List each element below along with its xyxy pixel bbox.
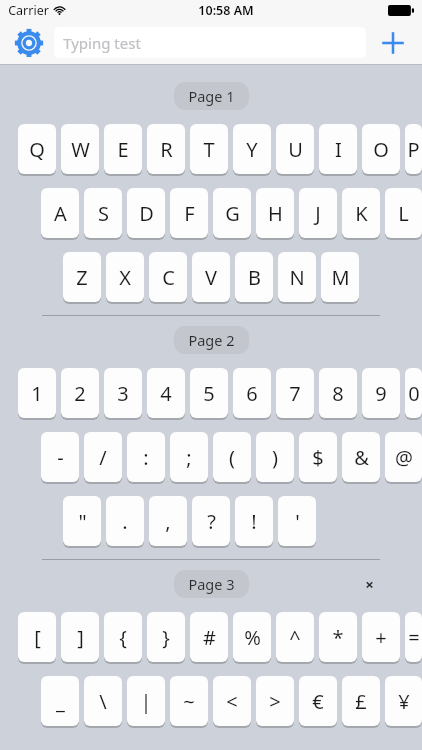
button[interactable]: 7 [276,368,314,418]
button[interactable]: ' [278,496,316,546]
button[interactable]: S [84,188,122,238]
button[interactable]: { [104,612,142,662]
staticText: G [225,200,240,227]
button[interactable]: Page 2 [174,326,249,354]
staticText: O [373,136,389,163]
button[interactable]: ) [256,432,294,482]
button[interactable]: R [147,124,185,174]
button[interactable]: \ [84,676,122,726]
button[interactable]: ; [170,432,208,482]
staticText: \ [99,688,107,715]
staticText: Page 2 [188,330,235,350]
button[interactable]: ! [235,496,273,546]
button[interactable]: N [278,252,316,302]
button[interactable]: Typing test [54,27,366,58]
button[interactable]: % [233,612,271,662]
button[interactable]: | [127,676,165,726]
button[interactable]: £ [342,676,380,726]
button[interactable]: + [362,612,400,662]
button[interactable]: E [104,124,142,174]
staticText: } [162,624,170,651]
button[interactable]: A [41,188,79,238]
button[interactable]: J [299,188,337,238]
button[interactable]: ^ [276,612,314,662]
button[interactable]: L [385,188,422,238]
staticText: 3 [117,380,129,407]
button[interactable]: _ [41,676,79,726]
button[interactable]: U [276,124,314,174]
button[interactable]: * [319,612,357,662]
button[interactable]: < [213,676,251,726]
button[interactable]: F [170,188,208,238]
button[interactable]: ¥ [385,676,422,726]
button[interactable]: Y [233,124,271,174]
staticText: Typing test [63,33,141,53]
button[interactable]: 1 [18,368,56,418]
button[interactable]: 9 [362,368,400,418]
button[interactable]: 3 [104,368,142,418]
button[interactable]: . [106,496,144,546]
button[interactable]: , [149,496,187,546]
button[interactable]: V [192,252,230,302]
button[interactable]: K [342,188,380,238]
staticText: = [408,624,420,651]
button[interactable]: } [147,612,185,662]
button[interactable]: ] [61,612,99,662]
button[interactable]: : [127,432,165,482]
staticText: ) [272,444,278,471]
button[interactable]: 0 [405,368,422,418]
staticText: - [57,444,64,471]
staticText: ( [229,444,235,471]
button[interactable]: ( [213,432,251,482]
button[interactable]: 5 [190,368,228,418]
button[interactable]: 2 [61,368,99,418]
staticText: S [98,200,109,227]
button[interactable]: Add [376,26,410,60]
staticText: : [143,444,149,471]
staticText: [ [34,624,41,651]
button[interactable]: Close [356,571,382,597]
button[interactable]: = [405,612,422,662]
button[interactable]: C [149,252,187,302]
button[interactable]: @ [385,432,422,482]
staticText: , [165,508,171,535]
staticText: 8 [332,380,344,407]
button[interactable]: 6 [233,368,271,418]
button[interactable]: D [127,188,165,238]
staticText: | [140,688,152,715]
button[interactable]: X [106,252,144,302]
button[interactable]: M [321,252,359,302]
button[interactable]: > [256,676,294,726]
button[interactable]: I [319,124,357,174]
staticText: L [398,200,409,227]
button[interactable]: P [405,124,422,174]
button[interactable]: T [190,124,228,174]
button[interactable]: Page 3 [174,570,249,598]
button[interactable]: - [41,432,79,482]
button[interactable]: & [342,432,380,482]
button[interactable]: # [190,612,228,662]
button[interactable]: " [63,496,101,546]
button[interactable]: W [61,124,99,174]
button[interactable]: H [256,188,294,238]
button[interactable]: [ [18,612,56,662]
button[interactable]: G [213,188,251,238]
button[interactable]: € [299,676,337,726]
button[interactable]: / [84,432,122,482]
button[interactable]: 4 [147,368,185,418]
staticText: V [205,264,217,291]
button[interactable]: ~ [170,676,208,726]
staticText: U [288,136,303,163]
staticText: " [78,508,87,535]
button[interactable]: Z [63,252,101,302]
staticText: Z [76,264,88,291]
staticText: M [331,264,350,291]
button[interactable]: Page 1 [174,82,249,110]
button[interactable]: 8 [319,368,357,418]
button[interactable]: $ [299,432,337,482]
button[interactable]: O [362,124,400,174]
button[interactable]: B [235,252,273,302]
button[interactable]: ? [192,496,230,546]
button[interactable]: Q [18,124,56,174]
button[interactable]: Settings [12,26,46,60]
